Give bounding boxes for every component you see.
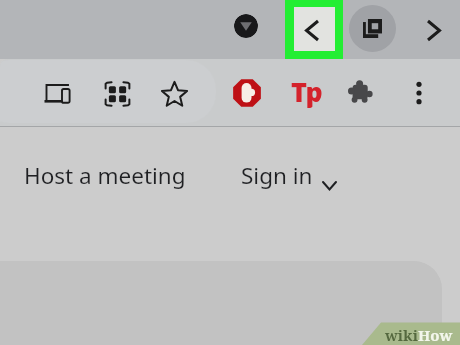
- button[interactable]: Host a meeting: [24, 160, 186, 191]
- staticText: wiki: [385, 325, 418, 345]
- button[interactable]: Switch tabs: [349, 5, 396, 52]
- button[interactable]: Forward: [418, 11, 450, 43]
- staticText: How: [418, 325, 453, 345]
- button[interactable]: Bookmark this page: [154, 74, 195, 114]
- button[interactable]: Scan QR code: [97, 74, 138, 114]
- button[interactable]: Tp extension: [286, 73, 322, 109]
- button[interactable]: Downloads: [234, 14, 258, 38]
- staticText: Tp: [291, 73, 322, 109]
- button[interactable]: More options: [403, 74, 435, 112]
- staticText: Host a meeting: [24, 160, 186, 191]
- button[interactable]: AdBlock extension: [225, 71, 269, 115]
- button[interactable]: Sign in: [241, 160, 335, 191]
- button[interactable]: Back: [294, 7, 335, 51]
- button[interactable]: Extensions: [340, 72, 382, 112]
- staticText: Sign in: [241, 160, 313, 191]
- button[interactable]: Cast to device: [37, 75, 77, 111]
